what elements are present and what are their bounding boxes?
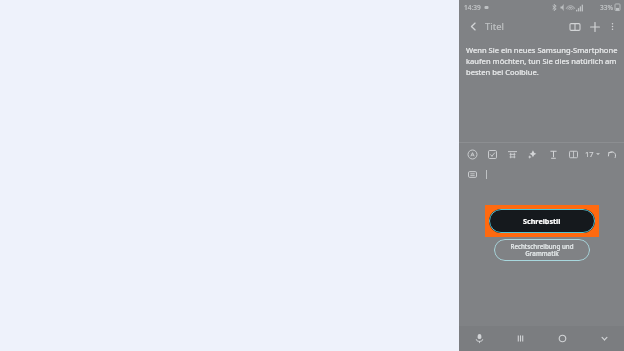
staticText: Titel [485, 20, 504, 33]
button[interactable]: Hinzufügen [586, 18, 603, 35]
button[interactable]: Startbildschirm [541, 326, 583, 351]
staticText: 14:39 [464, 3, 481, 12]
button[interactable]: Checkliste [484, 146, 500, 162]
staticText: 33% [600, 3, 613, 12]
button[interactable]: Absatz [504, 146, 520, 162]
button[interactable]: Tastatur schließen [583, 326, 624, 351]
staticText: Wenn Sie ein neues Samsung-Smartphone ka… [466, 45, 618, 77]
button[interactable]: Schreibstil [489, 209, 595, 233]
button[interactable]: Ansicht [566, 18, 583, 35]
button[interactable]: Tastatur [464, 166, 480, 182]
staticText: Schreibstil [523, 216, 561, 226]
button[interactable]: Tabelle [565, 146, 581, 162]
button[interactable]: Text [545, 146, 561, 162]
button[interactable]: Letzte Apps [500, 326, 541, 351]
button[interactable]: Stil [464, 146, 480, 162]
button[interactable]: 17 [585, 146, 600, 162]
button[interactable]: Effekt [524, 146, 540, 162]
staticText: Rechtschreibung und Grammatik [510, 242, 574, 258]
button[interactable]: Weitere Optionen [605, 19, 620, 34]
button[interactable]: Rückgängig [604, 146, 620, 162]
button[interactable]: Zurück [465, 18, 481, 34]
staticText: 17 [585, 149, 594, 159]
button[interactable]: Spracheingabe [459, 326, 500, 351]
button[interactable]: Rechtschreibung und Grammatik [494, 239, 590, 261]
